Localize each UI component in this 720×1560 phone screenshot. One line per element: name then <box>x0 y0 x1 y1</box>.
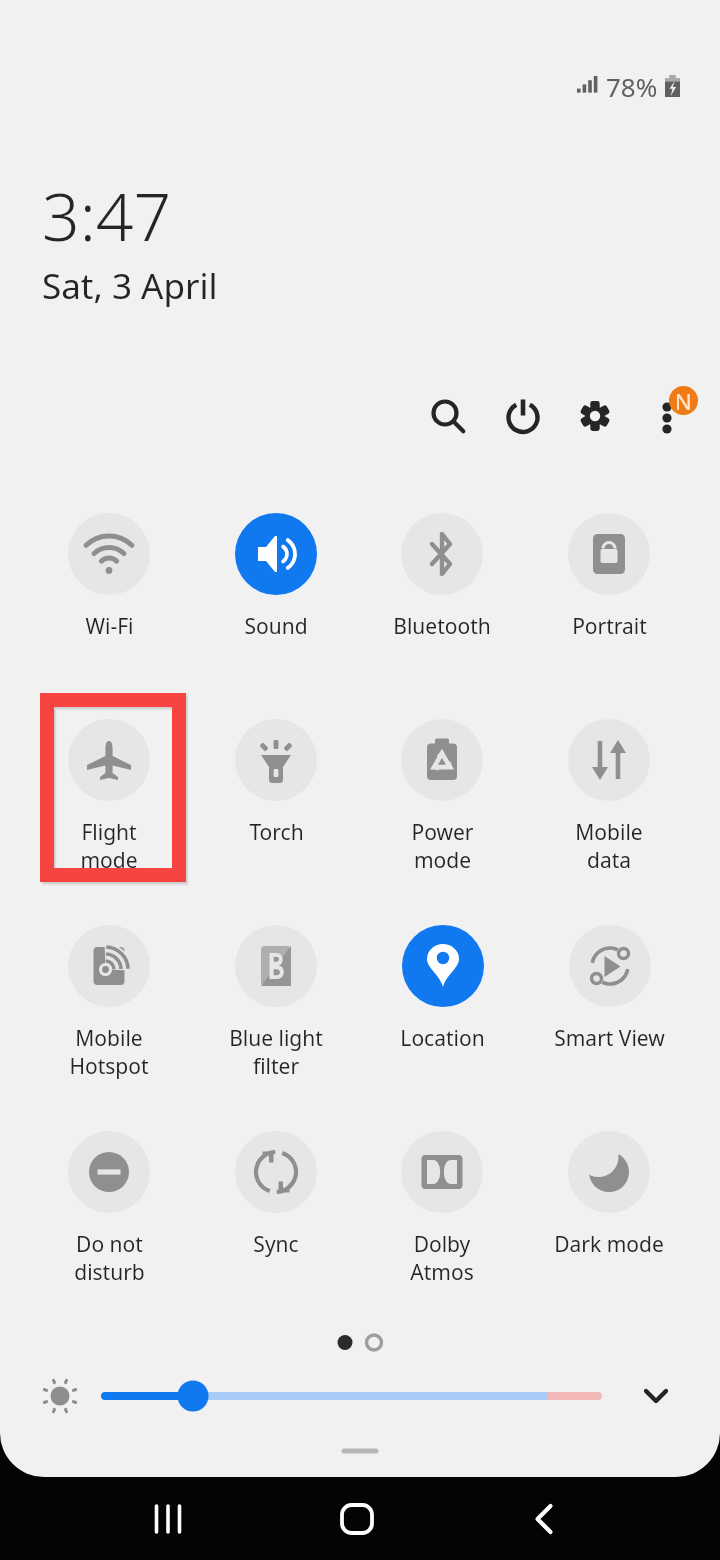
button[interactable]: Wi-Fi <box>26 513 192 688</box>
staticText: Sound <box>244 612 308 641</box>
staticText: Sync <box>253 1230 299 1259</box>
staticText: Smart View <box>554 1024 665 1053</box>
button[interactable]: Recent apps <box>126 1477 210 1560</box>
button[interactable]: Blue light filter <box>193 925 359 1100</box>
staticText: Flight mode <box>80 818 138 874</box>
button[interactable]: Mobile Hotspot <box>26 925 192 1100</box>
staticText: 78% <box>606 69 658 104</box>
button[interactable]: Power mode <box>359 719 525 894</box>
staticText: Sat, 3 April <box>42 262 218 310</box>
staticText: Mobile Hotspot <box>69 1024 149 1080</box>
button[interactable]: Location <box>359 925 525 1100</box>
button[interactable]: Mobile data <box>526 719 692 894</box>
staticText: Do not disturb <box>74 1230 145 1286</box>
button[interactable]: Flight mode <box>26 719 192 894</box>
button[interactable]: Bluetooth <box>359 513 525 688</box>
staticText: Wi-Fi <box>85 612 134 641</box>
button[interactable]: Expand <box>628 1372 684 1428</box>
staticText: Dolby Atmos <box>410 1230 474 1286</box>
button[interactable]: Dolby Atmos <box>359 1131 525 1306</box>
button[interactable]: More options <box>633 382 701 450</box>
staticText: Torch <box>249 818 304 847</box>
button[interactable]: Back <box>501 1477 585 1560</box>
staticText: Blue light filter <box>229 1024 323 1080</box>
button[interactable]: Sync <box>193 1131 359 1306</box>
button[interactable]: Search <box>414 382 482 450</box>
staticText: Location <box>400 1024 485 1053</box>
staticText: Mobile data <box>575 818 643 874</box>
staticText: N <box>675 386 692 415</box>
staticText: Dark mode <box>554 1230 664 1259</box>
button[interactable]: Portrait <box>526 513 692 688</box>
button[interactable]: Power <box>489 382 557 450</box>
button[interactable]: Home <box>315 1477 399 1560</box>
button[interactable]: Do not disturb <box>26 1131 192 1306</box>
staticText: Bluetooth <box>393 612 491 641</box>
button[interactable]: Smart View <box>526 925 692 1100</box>
staticText: 3:47 <box>42 170 172 260</box>
button[interactable]: Sound <box>193 513 359 688</box>
button[interactable]: Settings <box>561 382 629 450</box>
button[interactable]: Torch <box>193 719 359 894</box>
staticText: Power mode <box>411 818 474 874</box>
button[interactable]: Dark mode <box>526 1131 692 1306</box>
staticText: Portrait <box>572 612 647 641</box>
